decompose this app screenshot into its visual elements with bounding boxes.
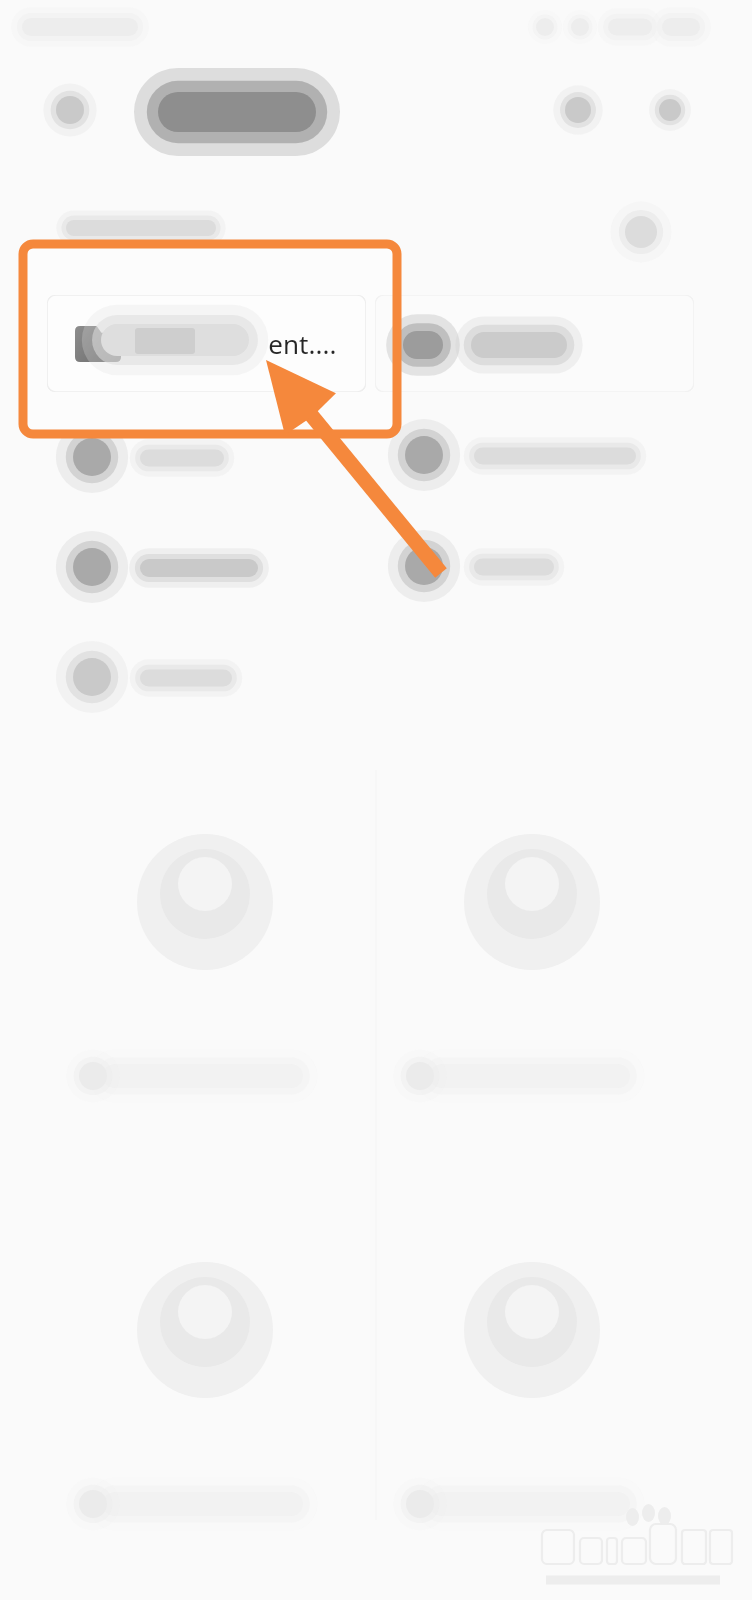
- button[interactable]: [375, 295, 694, 392]
- staticText: .con ent....: [136, 326, 337, 361]
- button[interactable]: .con ent....: [47, 295, 366, 392]
